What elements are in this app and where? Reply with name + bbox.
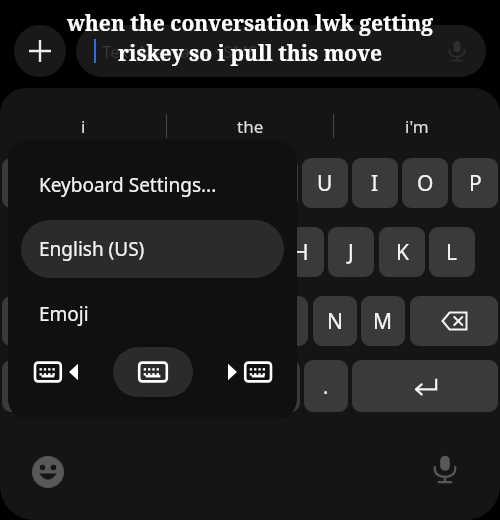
staticText: Emoji <box>39 301 89 327</box>
staticText: R <box>168 169 182 198</box>
button[interactable]: Keyboard Settings... <box>8 154 297 216</box>
button[interactable]: M <box>361 296 405 346</box>
button[interactable]: R <box>152 158 198 208</box>
staticText: i <box>81 115 86 138</box>
button[interactable]: Emoji <box>32 456 64 488</box>
button[interactable]: Keyboard <box>113 347 193 397</box>
staticText: i'm <box>405 115 429 138</box>
button[interactable]: T <box>202 158 248 208</box>
staticText: W <box>65 169 85 198</box>
button[interactable]: Z <box>70 296 114 346</box>
button[interactable]: i <box>0 105 166 147</box>
staticText: A <box>41 238 55 267</box>
staticText: ?123 <box>15 377 46 396</box>
staticText: H <box>293 238 309 267</box>
button[interactable]: U <box>302 158 348 208</box>
button[interactable]: Enter <box>352 360 498 412</box>
staticText: P <box>469 169 482 198</box>
staticText: M <box>373 307 393 336</box>
staticText: L <box>446 238 458 267</box>
button[interactable]: L <box>429 227 475 277</box>
staticText: when the conversation lwk getting riskey… <box>52 9 448 67</box>
button[interactable]: N <box>313 296 357 346</box>
staticText: O <box>417 169 434 198</box>
button[interactable]: Period <box>304 360 348 412</box>
button[interactable]: Backspace <box>410 296 498 346</box>
staticText: E <box>119 169 131 198</box>
button[interactable]: D <box>126 227 172 277</box>
button[interactable]: Emoji <box>8 288 297 340</box>
staticText: English (US) <box>39 236 145 262</box>
staticText: N <box>327 307 343 336</box>
button[interactable]: Move cursor left <box>26 351 88 393</box>
button[interactable]: P <box>452 158 498 208</box>
staticText: Keyboard Settings... <box>39 172 217 198</box>
button[interactable]: A <box>25 227 71 277</box>
button[interactable]: Text Message · SMS <box>76 25 486 77</box>
button[interactable]: O <box>402 158 448 208</box>
button[interactable]: K <box>379 227 425 277</box>
button[interactable]: Voice typing <box>430 454 460 484</box>
staticText: J <box>348 238 354 267</box>
button[interactable]: Comma <box>62 360 106 412</box>
staticText: I <box>371 169 379 198</box>
staticText: D <box>141 238 157 267</box>
button[interactable]: S <box>76 227 122 277</box>
button[interactable]: Add attachment <box>14 25 66 77</box>
staticText: S <box>93 238 105 267</box>
button[interactable]: I <box>352 158 398 208</box>
staticText: the <box>237 115 264 138</box>
button[interactable]: Voice input <box>446 40 468 62</box>
button[interactable]: W <box>52 158 98 208</box>
staticText: Z <box>86 307 99 336</box>
button[interactable]: B <box>264 296 308 346</box>
button[interactable]: the <box>167 105 333 147</box>
button[interactable]: Y <box>252 158 298 208</box>
button[interactable]: Move cursor right <box>218 351 280 393</box>
button[interactable]: H <box>278 227 324 277</box>
button[interactable]: E <box>102 158 148 208</box>
staticText: . <box>323 373 329 400</box>
button[interactable]: Shift <box>2 296 64 346</box>
button[interactable]: Space <box>110 360 300 412</box>
button[interactable]: J <box>328 227 374 277</box>
staticText: U <box>317 169 333 198</box>
staticText: Text Message · SMS <box>102 40 258 63</box>
button[interactable]: Symbols <box>2 360 58 412</box>
button[interactable]: English (US) <box>21 220 284 278</box>
staticText: K <box>396 238 409 267</box>
button[interactable]: Q <box>2 158 48 208</box>
button[interactable]: i'm <box>334 105 500 147</box>
